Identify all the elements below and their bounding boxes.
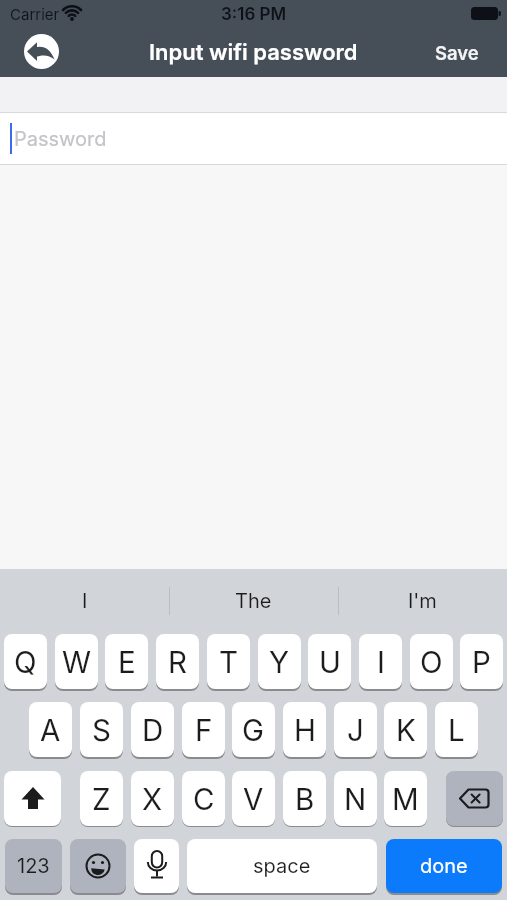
staticText: The <box>235 589 272 613</box>
staticText: 123 <box>17 854 50 878</box>
button[interactable]: I <box>0 569 169 633</box>
staticText: Y <box>269 644 290 680</box>
staticText: I <box>82 589 88 613</box>
button[interactable] <box>70 839 126 893</box>
button[interactable]: F <box>182 702 225 757</box>
button[interactable]: A <box>29 702 72 757</box>
staticText: F <box>195 712 213 748</box>
staticText: G <box>242 712 265 748</box>
staticText: L <box>448 712 465 748</box>
button[interactable]: I'm <box>338 569 507 633</box>
staticText: S <box>92 712 111 748</box>
staticText: N <box>344 781 367 817</box>
button[interactable] <box>4 771 61 826</box>
button[interactable]: W <box>55 634 98 689</box>
button[interactable]: I <box>359 634 402 689</box>
button[interactable]: M <box>384 771 427 826</box>
staticText: space <box>253 854 311 878</box>
button[interactable]: 123 <box>5 839 62 893</box>
staticText: P <box>472 644 491 680</box>
button[interactable] <box>134 839 179 893</box>
button[interactable]: N <box>334 771 377 826</box>
staticText: 3:16 PM <box>221 4 287 25</box>
button[interactable]: Save <box>427 28 487 77</box>
button[interactable]: D <box>131 702 174 757</box>
staticText: I'm <box>408 589 437 613</box>
button[interactable]: Password <box>0 112 507 165</box>
button[interactable]: C <box>182 771 225 826</box>
staticText: B <box>295 781 315 817</box>
staticText: C <box>193 781 215 817</box>
button[interactable]: K <box>384 702 427 757</box>
staticText: T <box>219 644 239 680</box>
button[interactable]: R <box>156 634 199 689</box>
button[interactable]: H <box>283 702 326 757</box>
button[interactable]: Z <box>80 771 123 826</box>
staticText: Input wifi password <box>149 39 358 66</box>
staticText: I <box>377 644 385 680</box>
button[interactable]: O <box>410 634 453 689</box>
button[interactable]: L <box>435 702 478 757</box>
staticText: A <box>40 712 61 748</box>
button[interactable]: space <box>187 839 377 893</box>
staticText: Password <box>14 127 107 151</box>
staticText: Carrier <box>10 5 60 23</box>
staticText: W <box>62 644 92 680</box>
button[interactable]: T <box>207 634 250 689</box>
button[interactable]: P <box>460 634 503 689</box>
staticText: O <box>420 644 443 680</box>
button[interactable]: J <box>334 702 377 757</box>
staticText: V <box>243 781 264 817</box>
staticText: M <box>392 781 419 817</box>
staticText: D <box>142 712 164 748</box>
staticText: R <box>168 644 187 680</box>
staticText: J <box>347 712 364 748</box>
button[interactable]: G <box>232 702 275 757</box>
button[interactable]: B <box>283 771 326 826</box>
staticText: done <box>420 854 468 878</box>
staticText: E <box>118 644 136 680</box>
staticText: H <box>294 712 316 748</box>
staticText: Z <box>92 781 111 817</box>
button[interactable]: The <box>169 569 338 633</box>
button[interactable]: V <box>232 771 275 826</box>
button[interactable]: U <box>308 634 351 689</box>
button[interactable]: S <box>80 702 123 757</box>
button[interactable]: Q <box>4 634 47 689</box>
button[interactable]: done <box>386 839 502 893</box>
staticText: K <box>396 712 416 748</box>
staticText: X <box>142 781 163 817</box>
button[interactable]: Y <box>258 634 301 689</box>
staticText: Q <box>14 644 37 680</box>
button[interactable] <box>24 34 59 69</box>
button[interactable] <box>446 771 503 826</box>
button[interactable]: E <box>105 634 148 689</box>
staticText: U <box>319 644 341 680</box>
staticText: Save <box>435 42 479 64</box>
button[interactable]: X <box>131 771 174 826</box>
